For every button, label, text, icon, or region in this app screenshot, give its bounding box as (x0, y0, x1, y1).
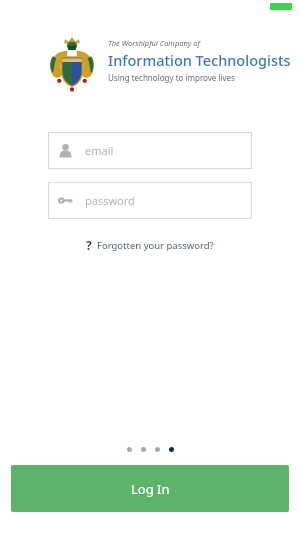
staticText: Forgotten your password? (97, 239, 214, 252)
button[interactable]: password (48, 182, 252, 219)
staticText: ? (86, 237, 92, 253)
staticText: Information Technologists (108, 50, 291, 70)
staticText: Log In (131, 480, 170, 498)
staticText: password (85, 193, 135, 208)
button[interactable]: Log In (11, 465, 289, 512)
staticText: email (85, 143, 114, 158)
button[interactable]: ? (82, 234, 218, 256)
staticText: Using technology to improve lives (108, 72, 235, 83)
staticText: The Worshipful Company of (108, 38, 200, 48)
button[interactable]: email (48, 132, 252, 169)
